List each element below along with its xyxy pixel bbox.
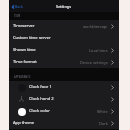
staticText: Clock hand 2 <box>29 96 54 102</box>
button[interactable]: App theme <box>9 117 119 129</box>
button[interactable]: Custom time server <box>9 32 119 44</box>
button[interactable]: Back <box>9 3 25 10</box>
staticText: App theme <box>13 120 35 126</box>
staticText: TIME <box>14 14 21 18</box>
button[interactable]: Time format <box>9 56 119 68</box>
staticText: Device settings <box>80 60 108 65</box>
staticText: Time format <box>13 59 37 65</box>
staticText: Custom time server <box>13 35 51 41</box>
staticText: Timeserver <box>13 23 35 29</box>
staticText: Back <box>15 4 23 9</box>
staticText: Local time <box>89 48 108 53</box>
staticText: Shown time <box>13 47 36 53</box>
staticText: Settings <box>56 4 72 9</box>
staticText: APPEARANCE <box>14 75 31 79</box>
staticText: White <box>97 109 108 114</box>
button[interactable]: Timeserver <box>9 20 119 32</box>
staticText: Clock color <box>29 108 51 114</box>
staticText: Dark <box>99 121 108 126</box>
button[interactable]: Clock face 1 <box>9 81 119 93</box>
button[interactable]: Clock color <box>9 105 119 117</box>
button[interactable]: Shown time <box>9 44 119 56</box>
staticText: Clock face 1 <box>29 84 52 90</box>
staticText: worldtimeapi <box>83 24 108 29</box>
button[interactable]: Clock hand 2 <box>9 93 119 105</box>
